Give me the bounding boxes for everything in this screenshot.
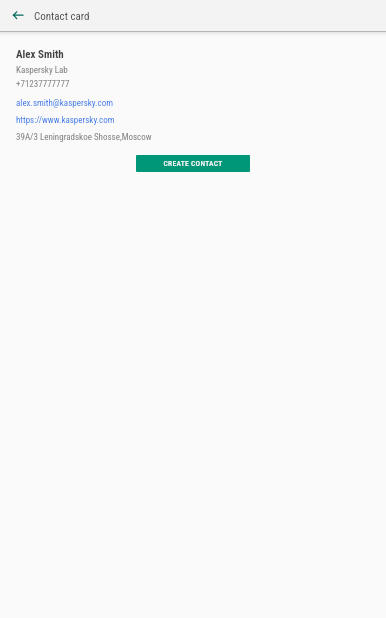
button[interactable]: https://www.kaspersky.com (16, 115, 115, 126)
button[interactable]: Back (6, 3, 30, 27)
staticText: Contact card (34, 10, 90, 23)
button[interactable]: CREATE CONTACT (136, 155, 250, 172)
staticText: Kaspersky Lab (16, 65, 68, 76)
staticText: Alex Smith (16, 48, 64, 61)
button[interactable]: alex.smith@kaspersky.com (16, 98, 113, 109)
staticText: +71237777777 (16, 79, 70, 90)
staticText: 39A/3 Leningradskoe Shosse,Moscow (16, 132, 152, 143)
staticText: CREATE CONTACT (163, 159, 223, 168)
